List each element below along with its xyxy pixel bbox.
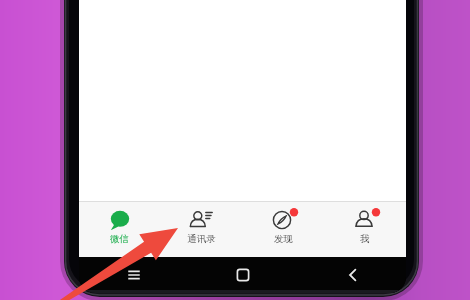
button[interactable]: Home xyxy=(188,257,297,293)
button[interactable]: Back xyxy=(297,257,406,293)
staticText: 通讯录 xyxy=(187,233,216,245)
staticText: 发现 xyxy=(274,233,293,245)
button[interactable]: Recent apps xyxy=(79,257,188,293)
staticText: 微信 xyxy=(110,233,129,245)
button[interactable]: 我 xyxy=(324,202,406,257)
button[interactable]: 发现 xyxy=(242,202,324,257)
button[interactable]: 微信 xyxy=(79,202,160,257)
staticText: 我 xyxy=(360,233,370,245)
button[interactable]: 通讯录 xyxy=(160,202,242,257)
